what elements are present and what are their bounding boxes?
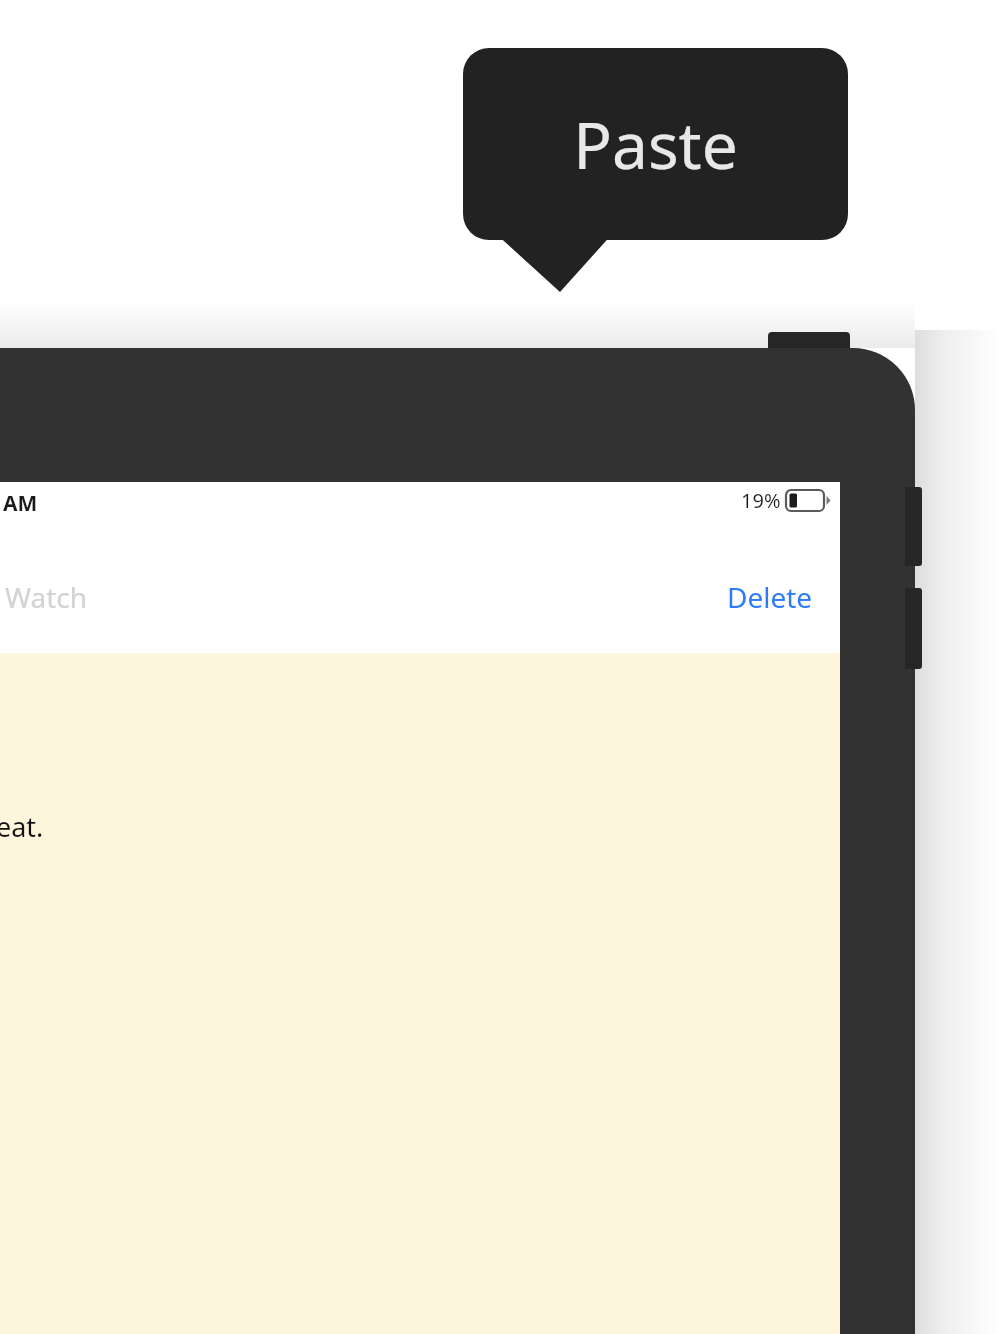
staticText: Watch [5, 578, 88, 616]
staticText: 19% [741, 487, 781, 514]
button[interactable]: Watch [0, 565, 120, 629]
button[interactable]: Volume down [905, 588, 922, 669]
button[interactable]: Paste [463, 48, 848, 240]
staticText: eat. [0, 808, 44, 845]
button[interactable]: Delete [712, 565, 828, 629]
button[interactable]: Volume up [905, 487, 922, 566]
staticText: Delete [727, 578, 813, 616]
staticText: AM [3, 489, 38, 518]
staticText: Paste [573, 101, 738, 188]
